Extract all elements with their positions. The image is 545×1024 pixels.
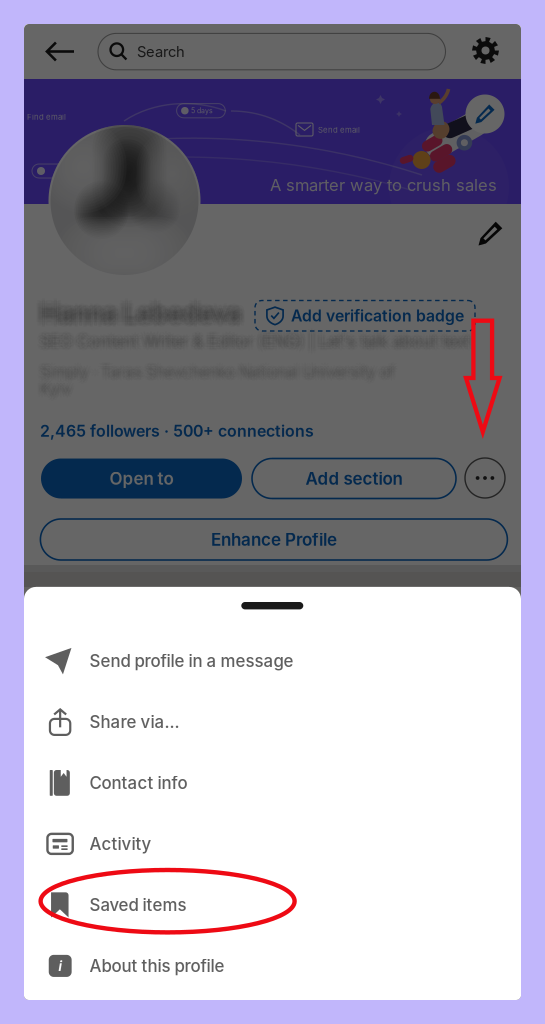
staticText: Hanna Lebedeva [35,298,236,328]
staticText: SEO Content Writer & Editor (ENG) | Let'… [36,331,466,351]
staticText: Simply · Taras Shevchenko National Unive… [36,363,391,381]
staticText: Simply · Taras Shevchenko National Unive… [43,365,398,384]
staticText: Kyiv [43,377,75,396]
staticText: Enhance Profile [211,529,337,550]
staticText: Open to [109,468,173,489]
button[interactable]: i [24,935,521,996]
staticText: SEO Content Writer & Editor (ENG) | Let'… [44,331,474,351]
staticText: Simply · Taras Shevchenko National Unive… [40,363,395,381]
staticText: Simply · Taras Shevchenko National Unive… [38,364,393,383]
staticText: Kyiv [44,380,76,398]
staticText: Hanna Lebedeva [38,300,239,331]
staticText: SEO Content Writer & Editor (ENG) | Let'… [42,333,472,352]
button[interactable]: Edit profile [24,24,521,1000]
button[interactable]: Activity [24,813,521,874]
staticText: Search [137,43,185,60]
button[interactable]: Add section [24,24,521,1000]
staticText: Hanna Lebedeva [45,298,246,328]
button[interactable]: Share via... [24,691,521,752]
staticText: Hanna Lebedeva [36,301,237,332]
staticText: Hanna Lebedeva [42,300,243,331]
staticText: Hanna Lebedeva [38,295,239,326]
staticText: Hanna Lebedeva [43,298,244,328]
staticText: SEO Content Writer & Editor (ENG) | Let'… [38,331,468,351]
staticText: Kyiv [37,377,69,396]
staticText: Add section [305,468,402,489]
staticText: i [58,957,62,975]
staticText: Kyiv [38,381,70,400]
button[interactable]: Add verification badge [24,24,521,1000]
button[interactable]: Settings [24,24,521,1000]
staticText: Kyiv [40,376,72,395]
button[interactable]: Open to [24,24,521,1000]
staticText: A smarter way to crush sales [270,175,497,195]
staticText: SEO Content Writer & Editor (ENG) | Let'… [38,333,468,352]
staticText: Saved items [89,895,186,915]
staticText: Kyiv [36,380,68,398]
staticText: Activity [89,834,151,854]
staticText: Kyiv [41,381,73,400]
staticText: About this profile [89,956,224,976]
staticText: 2,465 followers · 500+ connections [40,421,314,441]
button[interactable]: Enhance Profile [24,24,521,1000]
button[interactable]: Send profile in a message [24,630,521,691]
staticText: SEO Content Writer & Editor (ENG) | Let'… [37,328,467,348]
button[interactable]: Saved items [24,874,521,935]
staticText: Simply · Taras Shevchenko National Unive… [40,359,395,378]
staticText: Kyiv [40,380,72,398]
button[interactable]: Search [24,24,521,1000]
staticText: Hanna Lebedeva [40,302,241,333]
staticText: SEO Content Writer & Editor (ENG) | Let'… [40,328,470,347]
staticText: Kyiv [40,383,72,401]
staticText: SEO Content Writer & Editor (ENG) | Let'… [37,334,467,353]
staticText: Kyiv [37,382,69,401]
staticText: Kyiv [40,378,72,396]
staticText: Hanna Lebedeva [42,295,243,326]
staticText: Kyiv [38,378,70,397]
staticText: Simply · Taras Shevchenko National Unive… [43,360,398,379]
staticText: Simply · Taras Shevchenko National Unive… [37,365,392,384]
button[interactable]: Contact info [24,752,521,813]
staticText: Hanna Lebedeva [37,298,238,328]
staticText: SEO Content Writer & Editor (ENG) | Let'… [40,331,470,351]
staticText: Simply · Taras Shevchenko National Unive… [40,361,395,379]
staticText: SEO Content Writer & Editor (ENG) | Let'… [40,334,470,353]
staticText: Simply · Taras Shevchenko National Unive… [41,364,396,383]
staticText: SEO Content Writer & Editor (ENG) | Let'… [40,329,470,348]
staticText: Kyiv [42,380,74,398]
staticText: Hanna Lebedeva [40,294,241,325]
staticText: Kyiv [38,380,70,398]
staticText: SEO Content Writer & Editor (ENG) | Let'… [42,329,472,349]
button[interactable]: More [24,24,521,1000]
staticText: Simply · Taras Shevchenko National Unive… [42,363,397,381]
staticText: Send email [318,125,360,135]
staticText: Hanna Lebedeva [40,301,241,332]
staticText: Hanna Lebedeva [44,301,245,332]
staticText: SEO Content Writer & Editor (ENG) | Let'… [43,328,473,348]
staticText: SEO Content Writer & Editor (ENG) | Let'… [40,335,470,354]
staticText: Hanna Lebedeva [40,293,241,324]
staticText: Add verification badge [291,306,464,325]
staticText: Simply · Taras Shevchenko National Unive… [41,361,396,380]
staticText: Simply · Taras Shevchenko National Unive… [37,360,392,379]
staticText: Hanna Lebedeva [40,298,241,328]
staticText: Simply · Taras Shevchenko National Unive… [40,366,395,384]
staticText: Kyiv [41,378,73,397]
staticText: Share via... [89,712,179,732]
staticText: 5 days [191,106,213,115]
staticText: Find email [27,112,66,122]
staticText: SEO Content Writer & Editor (ENG) | Let'… [43,334,473,353]
staticText: Kyiv [40,382,72,400]
staticText: Kyiv [43,382,75,401]
staticText: Send profile in a message [89,651,293,671]
staticText: SEO Content Writer & Editor (ENG) | Let'… [38,329,468,349]
staticText: Contact info [89,773,187,793]
staticText: Simply · Taras Shevchenko National Unive… [44,363,399,381]
staticText: SEO Content Writer & Editor (ENG) | Let'… [42,331,472,351]
staticText: Simply · Taras Shevchenko National Unive… [40,365,395,383]
staticText: Hanna Lebedeva [44,294,245,325]
staticText: Hanna Lebedeva [36,294,237,325]
staticText: Simply · Taras Shevchenko National Unive… [38,361,393,380]
button[interactable]: Back [24,24,521,1000]
staticText: Simply · Taras Shevchenko National Unive… [38,363,393,381]
